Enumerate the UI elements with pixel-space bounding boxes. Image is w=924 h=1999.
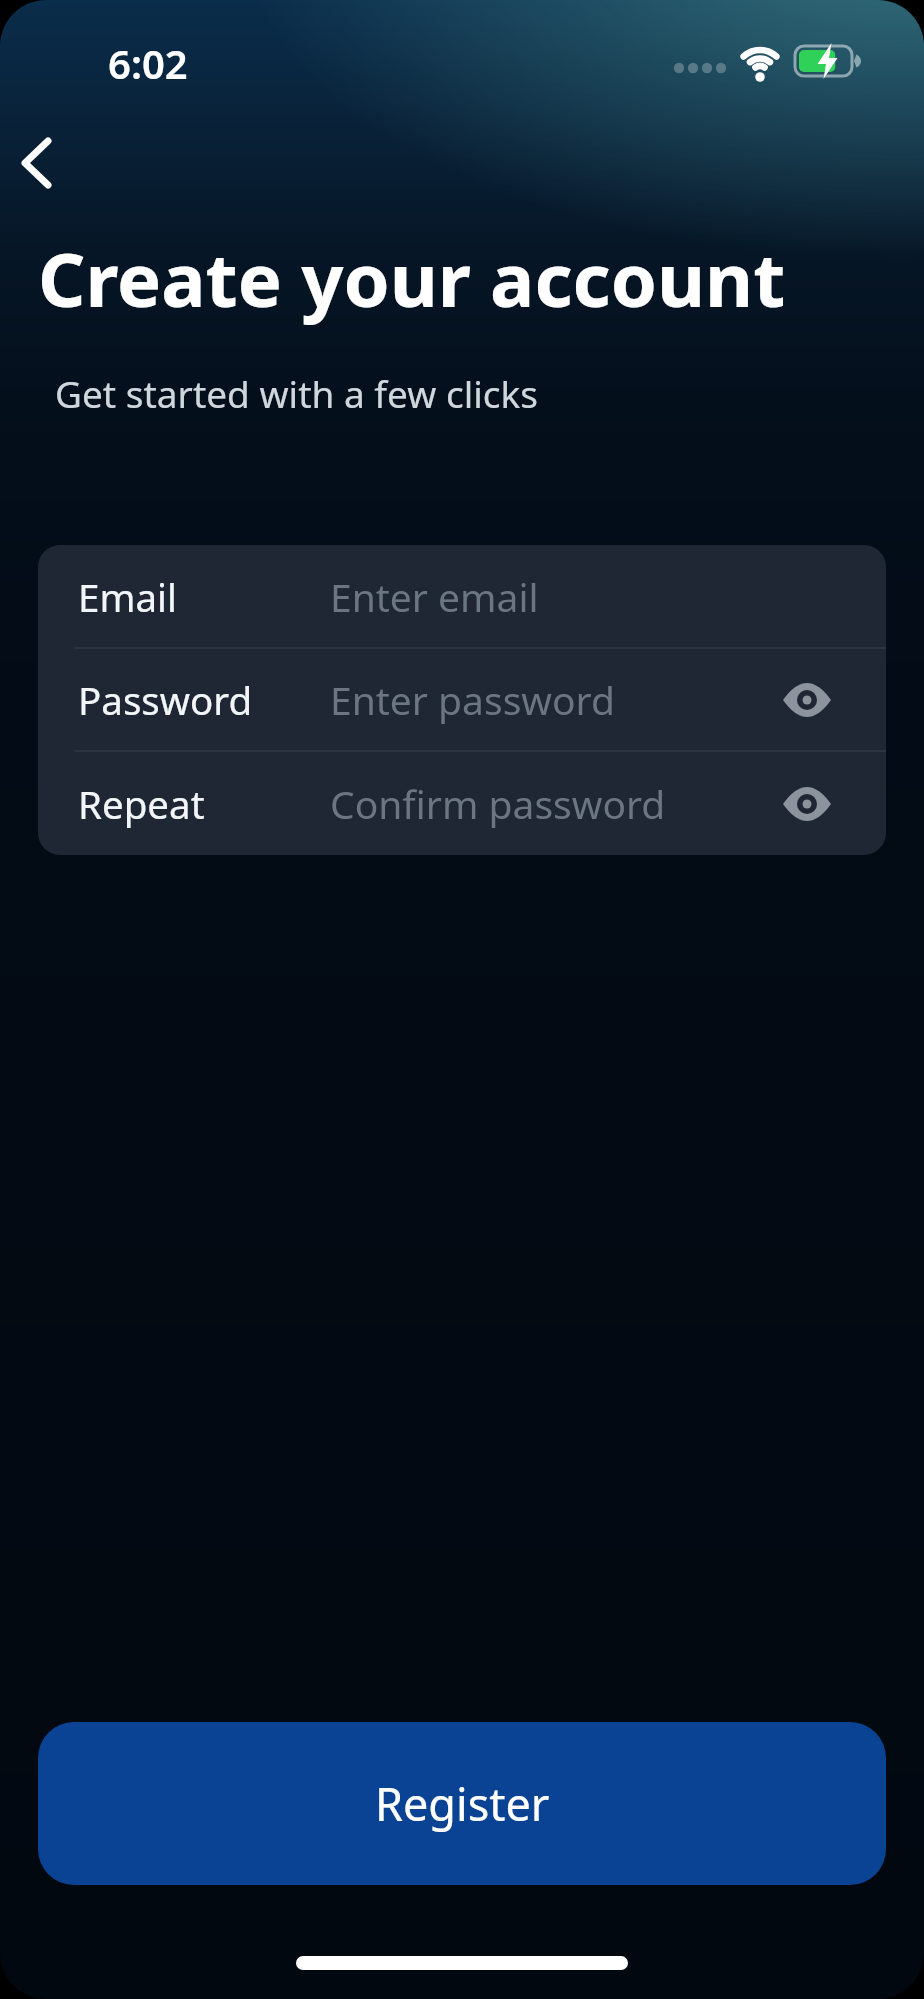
- button[interactable]: [6, 124, 82, 200]
- staticText: Enter email: [330, 570, 539, 623]
- staticText: Enter password: [330, 673, 615, 726]
- button[interactable]: Password: [38, 648, 886, 751]
- staticText: Create your account: [38, 228, 786, 329]
- staticText: Email: [78, 571, 177, 623]
- staticText: Get started with a few clicks: [55, 368, 538, 418]
- staticText: Repeat: [78, 778, 205, 830]
- staticText: Password: [78, 674, 253, 726]
- button[interactable]: Register: [38, 1722, 886, 1885]
- button[interactable]: Email: [38, 545, 886, 648]
- staticText: Register: [375, 1773, 550, 1834]
- staticText: 6:02: [108, 36, 188, 90]
- staticText: Confirm password: [330, 777, 666, 830]
- button[interactable]: Repeat: [38, 752, 886, 855]
